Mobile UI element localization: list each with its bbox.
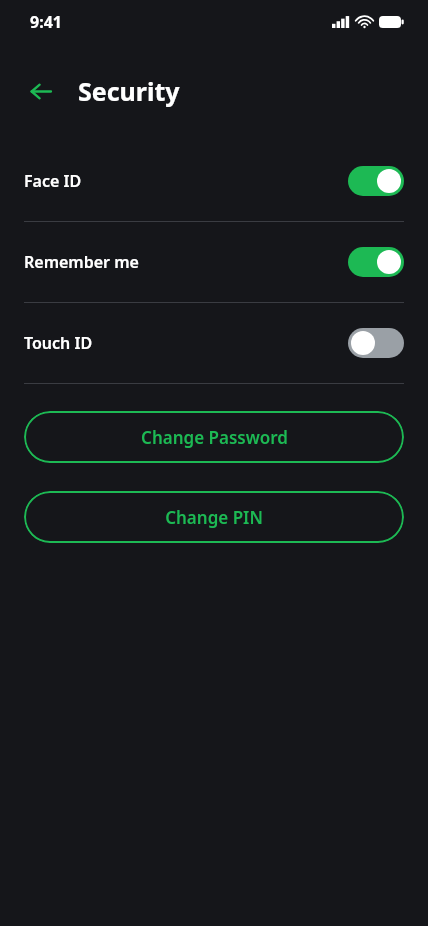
button[interactable]: Change Password (24, 411, 404, 463)
staticText: Touch ID (24, 332, 348, 354)
staticText: Security (78, 74, 180, 108)
button[interactable]: Back (24, 75, 56, 107)
staticText: Change Password (141, 426, 288, 449)
staticText: Remember me (24, 251, 348, 273)
button[interactable]: Touch ID (0, 303, 428, 383)
button[interactable]: Change PIN (24, 491, 404, 543)
button[interactable]: Remember me (0, 222, 428, 302)
button[interactable]: On (348, 166, 404, 196)
staticText: Change PIN (165, 506, 263, 529)
button[interactable]: On (348, 247, 404, 277)
button[interactable]: Face ID (0, 141, 428, 221)
staticText: Face ID (24, 170, 348, 192)
button[interactable]: Off (348, 328, 404, 358)
staticText: 9:41 (30, 11, 62, 33)
